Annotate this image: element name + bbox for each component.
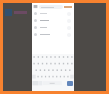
button[interactable]: Menu <box>33 4 38 9</box>
button[interactable]: Logo <box>5 9 27 16</box>
button[interactable] <box>32 24 74 31</box>
button[interactable] <box>39 5 63 9</box>
button[interactable]: Enter <box>67 81 73 86</box>
button[interactable] <box>32 31 74 38</box>
button[interactable] <box>32 10 74 17</box>
button[interactable] <box>32 17 74 24</box>
